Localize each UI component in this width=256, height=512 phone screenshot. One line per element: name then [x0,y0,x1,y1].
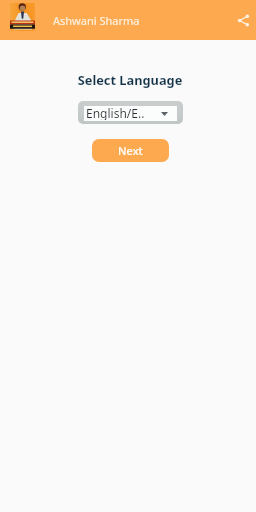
staticText: Ashwani Sharma [53,13,140,28]
staticText: Select Language [2,71,256,88]
staticText: English/E.. [86,105,145,120]
button[interactable]: Profile [10,3,35,31]
button[interactable]: Next [92,139,169,162]
button[interactable]: English/E.. [78,101,183,124]
button[interactable]: Share [231,8,255,32]
staticText: Next [118,143,143,158]
